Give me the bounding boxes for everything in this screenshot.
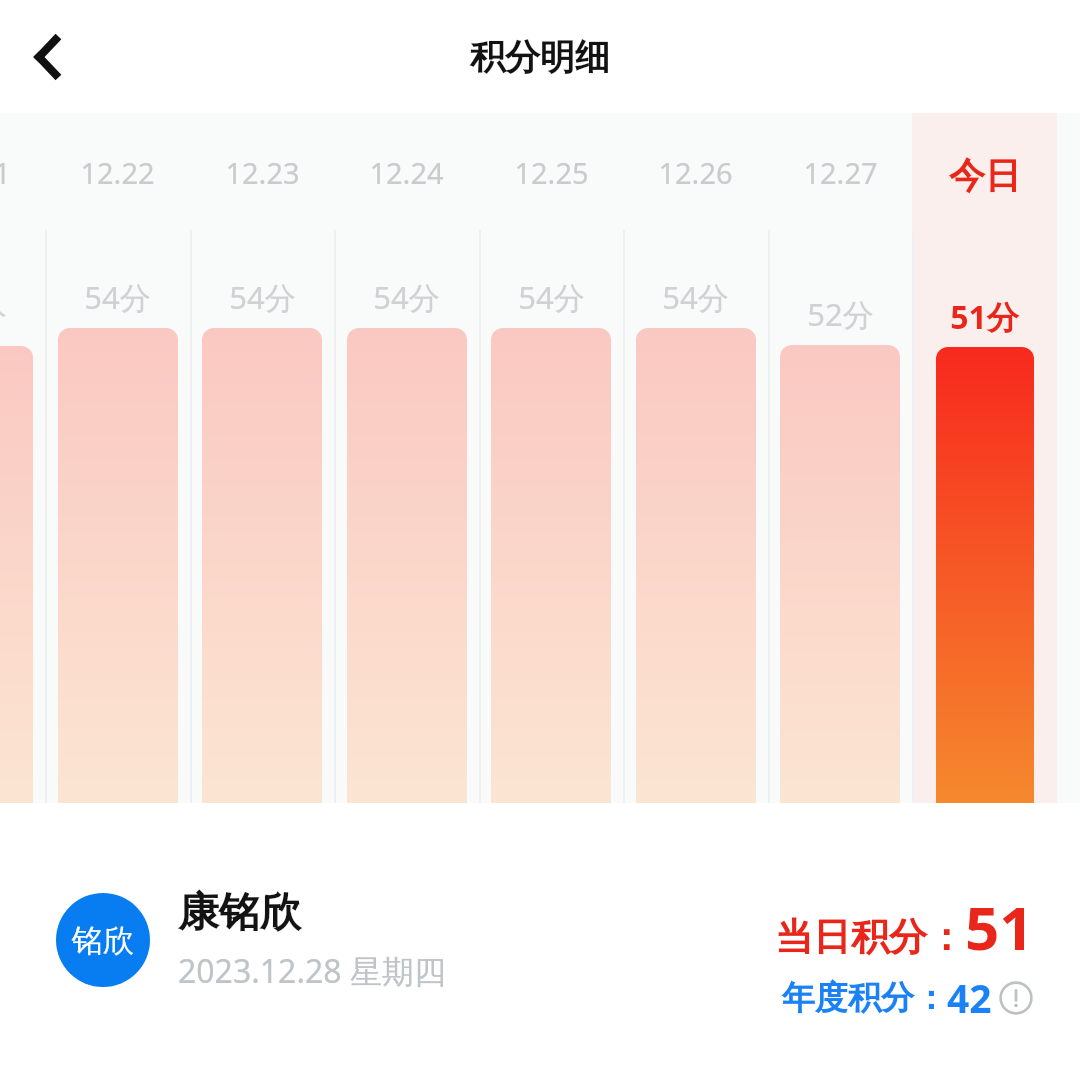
button[interactable]: 当日积分： [775,879,1034,961]
staticText: 年度积分： [782,977,947,1019]
button[interactable] [58,328,178,803]
staticText: 42 [947,971,992,1024]
button[interactable] [202,328,322,803]
staticText: 54分 [0,294,7,336]
staticText: 54分 [373,276,440,318]
staticText: 51分 [950,295,1019,339]
staticText: 当日积分： [775,913,965,961]
staticText: 2023.12.28 星期四 [178,949,446,993]
button[interactable] [936,347,1034,803]
staticText: 康铭欣 [178,887,301,939]
staticText: 54分 [84,276,151,318]
staticText: 12.23 [225,153,300,192]
button[interactable]: Back [12,23,80,91]
staticText: 51 [965,886,1034,968]
button[interactable] [347,328,467,803]
staticText: 54分 [662,276,729,318]
button[interactable] [636,328,756,803]
button[interactable]: 铭欣 [56,887,446,993]
staticText: 今日 [949,153,1021,198]
staticText: 54分 [518,276,585,318]
staticText: 12.22 [80,153,155,192]
button[interactable] [0,346,33,803]
staticText: 12.24 [369,153,444,192]
staticText: 12.21 [0,153,11,192]
staticText: 铭欣 [72,921,134,960]
button[interactable] [780,345,900,803]
staticText: 积分明细 [470,35,610,79]
button[interactable] [491,328,611,803]
staticText: 52分 [807,293,874,335]
button[interactable]: 年度积分： [782,971,1034,1024]
button[interactable]: Info [998,980,1034,1016]
staticText: 12.25 [514,153,589,192]
staticText: 12.26 [658,153,733,192]
staticText: 12.27 [803,153,878,192]
staticText: 54分 [229,276,296,318]
